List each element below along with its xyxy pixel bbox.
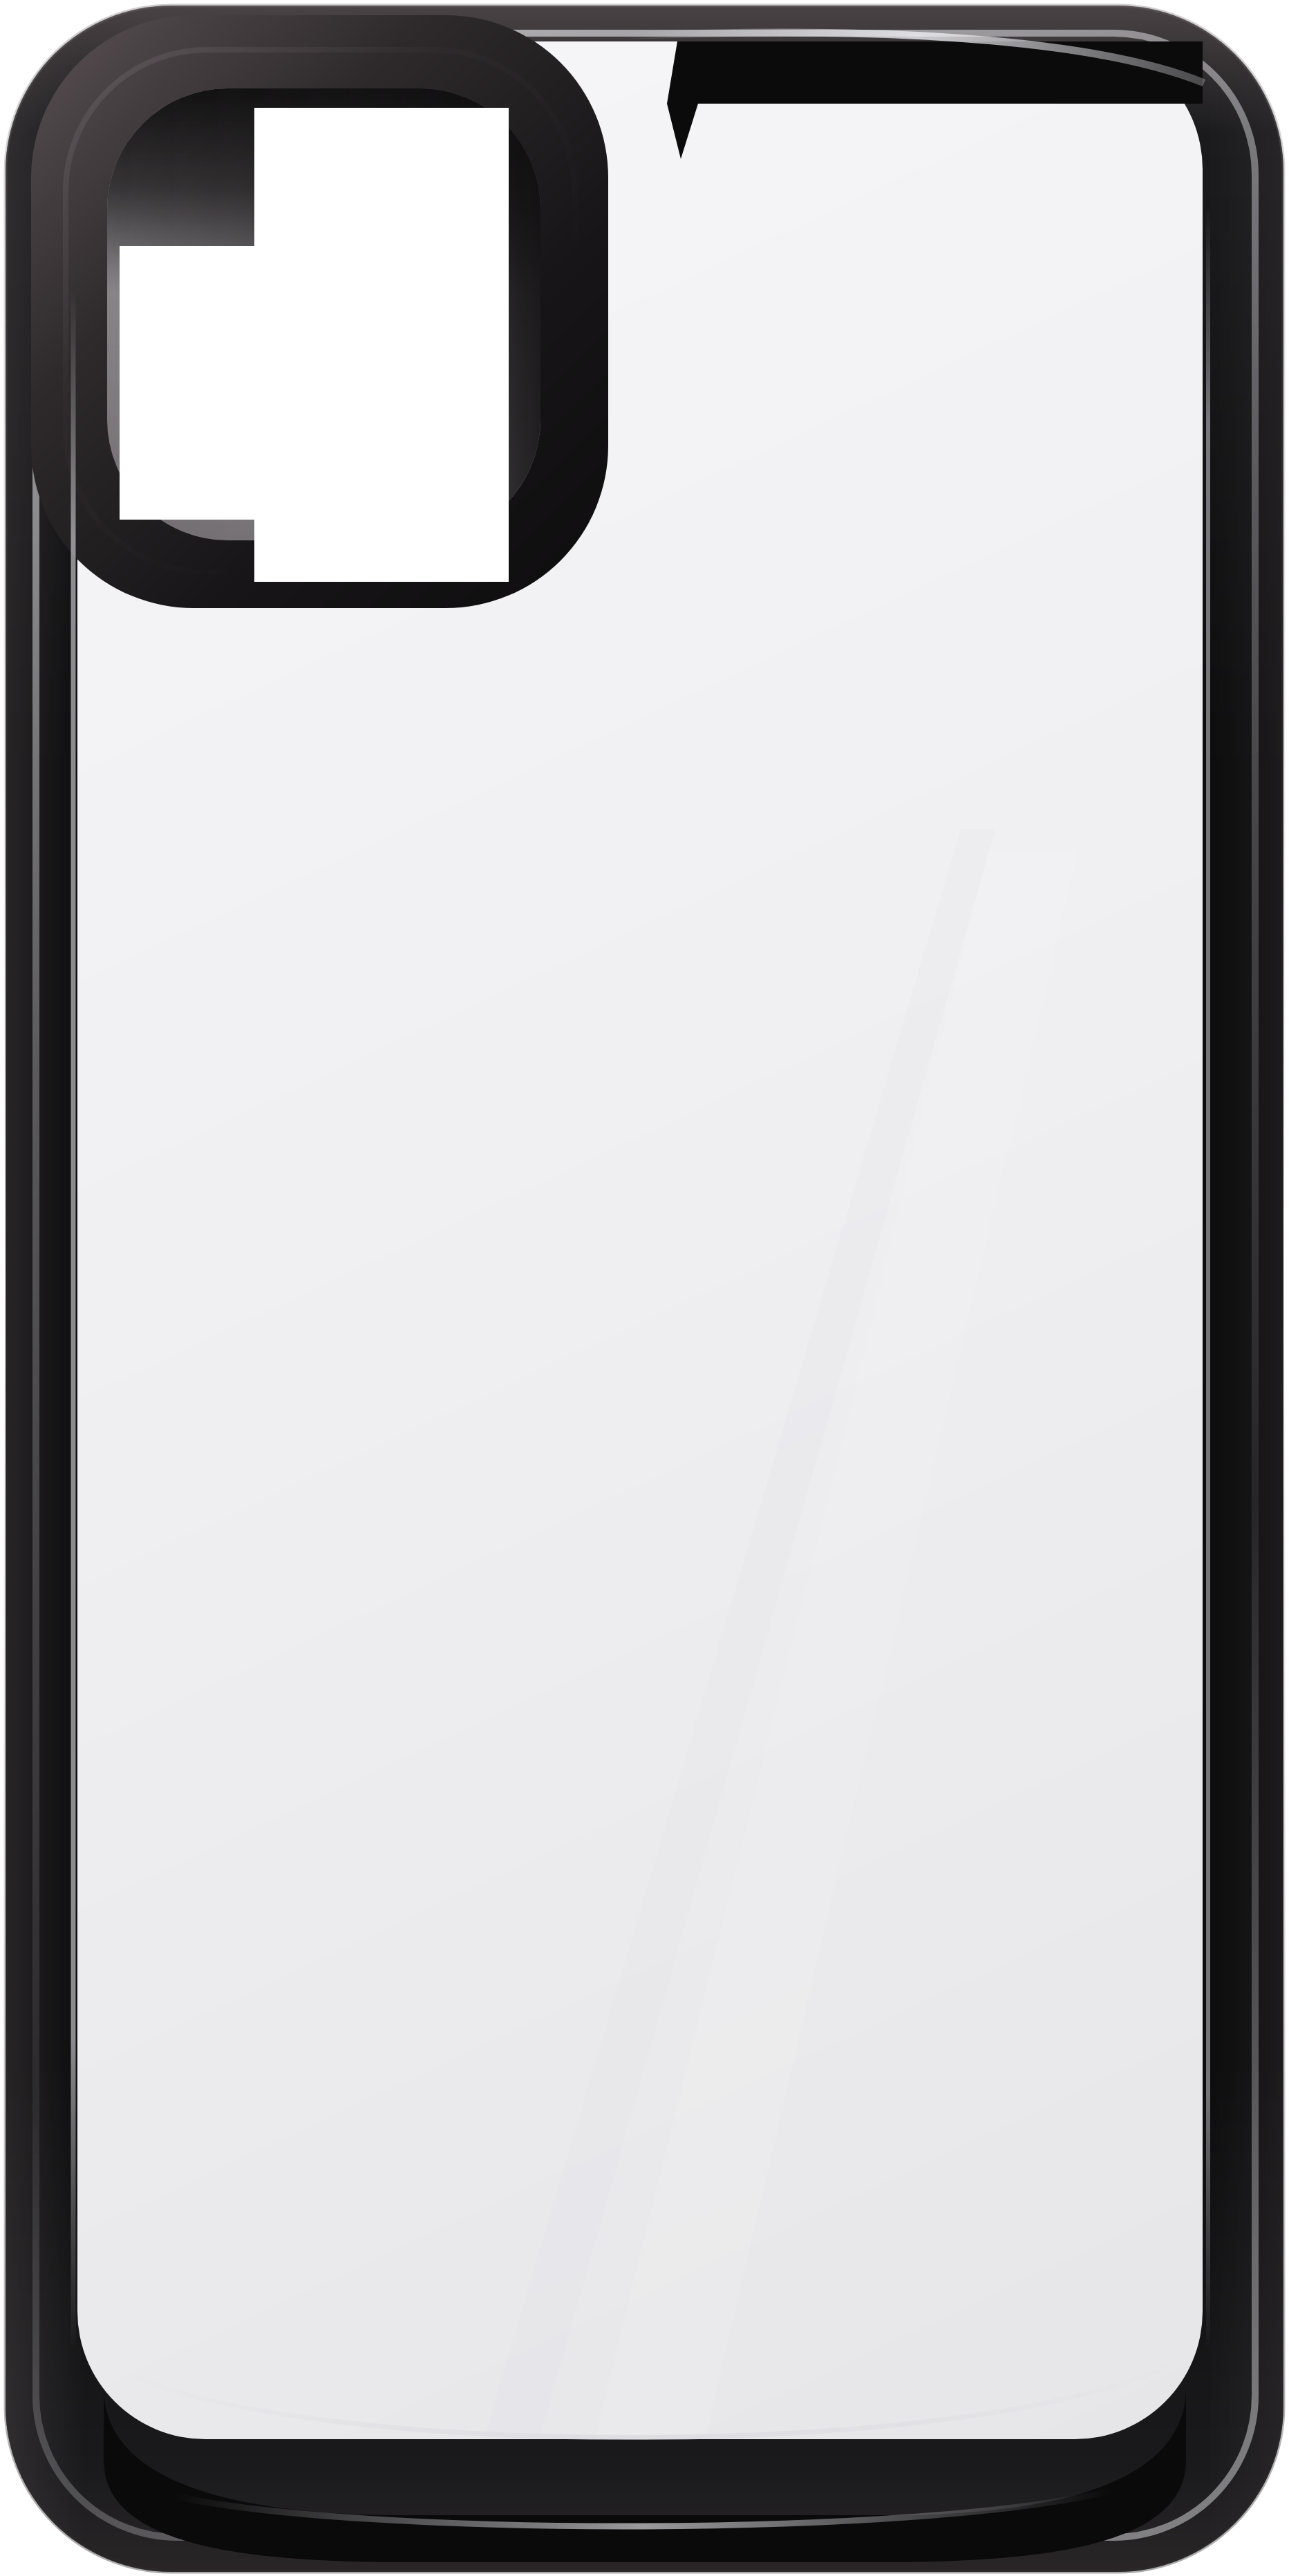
button[interactable]: Black bumper phone case with clear back [0,0,1289,2576]
